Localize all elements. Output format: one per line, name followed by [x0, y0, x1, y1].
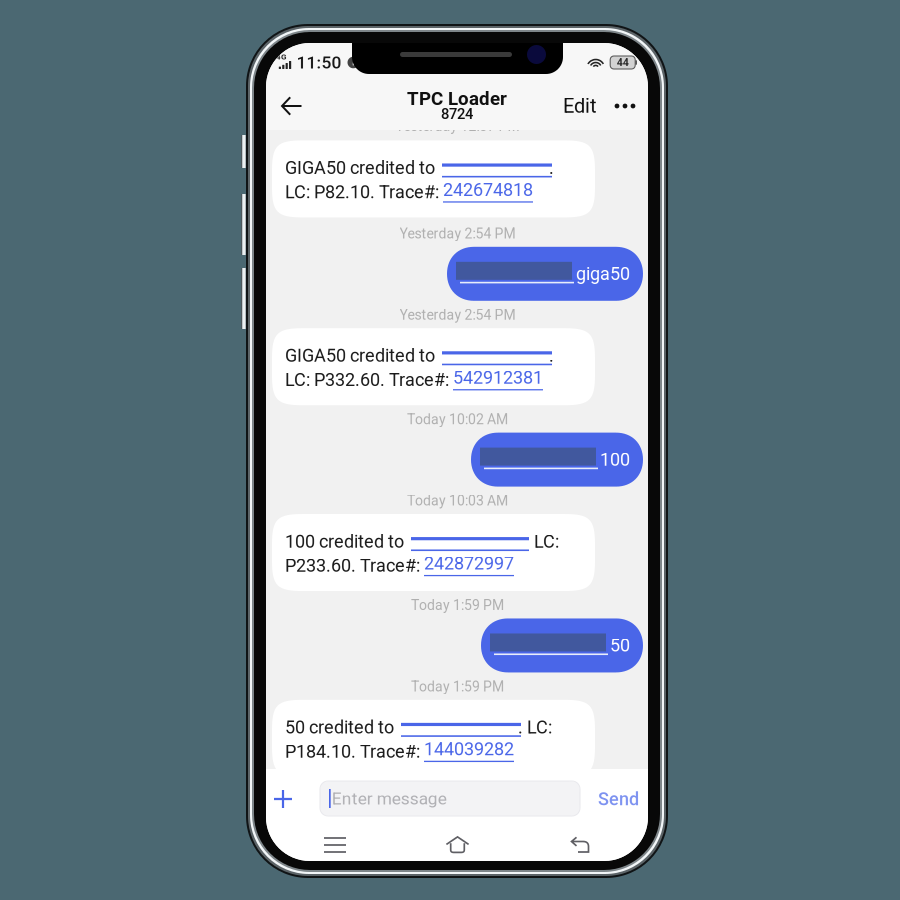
staticText: GIGA50 credited to — [285, 157, 439, 178]
button[interactable]: More options — [607, 84, 643, 128]
staticText: . — [549, 345, 554, 366]
staticText: 242674818 — [443, 179, 533, 200]
staticText: LC: P332.60. Trace#: — [285, 369, 453, 390]
staticText: P233.60. Trace#: — [285, 555, 424, 576]
button[interactable]: Home — [407, 829, 507, 861]
staticText: 4G — [276, 52, 286, 61]
button[interactable]: Add attachment — [261, 777, 305, 821]
staticText: 50 credited to — [285, 717, 398, 738]
staticText: 8724 — [441, 105, 473, 123]
staticText: 144039282 — [424, 739, 514, 760]
staticText: 50 — [606, 635, 630, 656]
staticText: Today 10:02 AM — [407, 411, 508, 428]
staticText: Today 1:59 PM — [411, 678, 504, 695]
staticText: 542912381 — [453, 367, 543, 388]
staticText: 100 — [596, 449, 630, 470]
staticText: 11:50 — [296, 52, 341, 73]
staticText: 100 credited to — [285, 531, 408, 552]
button[interactable]: Send — [589, 777, 648, 821]
staticText: TPC Loader — [407, 88, 507, 109]
staticText: Send — [598, 788, 639, 810]
staticText: Enter message — [332, 788, 447, 809]
staticText: LC: P82.10. Trace#: — [285, 181, 443, 203]
button[interactable]: Recents — [285, 829, 385, 861]
staticText: Edit — [563, 94, 597, 118]
staticText: 44 — [617, 56, 629, 69]
staticText: Yesterday 12:37 PM — [395, 118, 519, 134]
staticText: Today 1:59 PM — [411, 597, 504, 613]
button[interactable]: Back — [530, 829, 630, 861]
staticText: . LC: — [518, 717, 552, 738]
staticText: 242872997 — [424, 553, 514, 574]
button[interactable]: Enter message — [320, 781, 580, 816]
button[interactable]: Back — [270, 84, 314, 128]
staticText: Today 10:03 AM — [407, 493, 508, 509]
staticText: P184.10. Trace#: — [285, 741, 424, 762]
staticText: . — [549, 157, 554, 178]
staticText: Yesterday 2:54 PM — [399, 307, 515, 323]
staticText: giga50 — [572, 263, 630, 284]
button[interactable]: Edit — [553, 84, 607, 128]
staticText: LC: — [526, 531, 559, 552]
staticText: GIGA50 credited to — [285, 345, 439, 366]
staticText: Yesterday 2:54 PM — [399, 225, 515, 242]
